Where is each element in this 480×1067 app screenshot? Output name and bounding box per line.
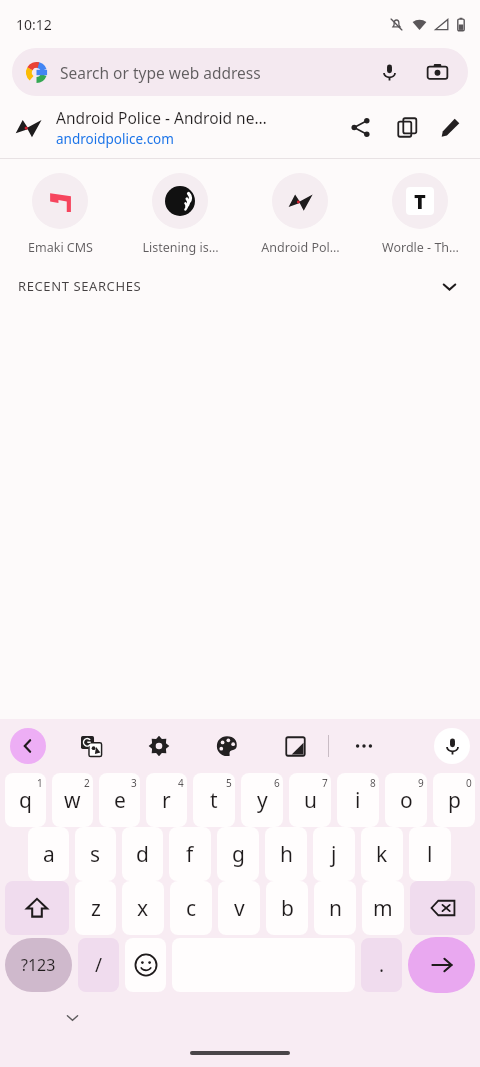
staticText: /: [95, 952, 103, 978]
staticText: s: [90, 840, 101, 869]
button[interactable]: Translate: [74, 729, 108, 763]
staticText: q: [19, 786, 32, 815]
button[interactable]: p: [433, 773, 475, 827]
staticText: k: [376, 840, 388, 869]
staticText: Listening is…: [142, 239, 219, 256]
staticText: Search or type web address: [60, 62, 261, 83]
button[interactable]: Theme: [210, 729, 244, 763]
staticText: Android Police - Android ne…: [56, 107, 267, 128]
button[interactable]: q: [5, 773, 46, 827]
button[interactable]: g: [217, 827, 259, 881]
button[interactable]: d: [122, 827, 163, 881]
button[interactable]: Emoji: [125, 938, 166, 992]
button[interactable]: w: [52, 773, 93, 827]
staticText: n: [329, 894, 342, 923]
staticText: p: [448, 786, 461, 815]
button[interactable]: Android Pol…: [240, 169, 360, 260]
button[interactable]: /: [78, 938, 119, 992]
staticText: i: [355, 786, 361, 815]
button[interactable]: Search or type web address: [12, 48, 468, 96]
button[interactable]: Edit query: [426, 103, 474, 151]
staticText: 6: [274, 776, 280, 790]
button[interactable]: j: [313, 827, 355, 881]
button[interactable]: f: [169, 827, 211, 881]
staticText: y: [257, 786, 268, 815]
button[interactable]: a: [28, 827, 69, 881]
staticText: b: [281, 894, 294, 923]
button[interactable]: c: [170, 881, 212, 935]
button[interactable]: z: [75, 881, 116, 935]
staticText: 5: [226, 776, 232, 790]
staticText: 9: [418, 776, 424, 790]
button[interactable]: s: [75, 827, 116, 881]
button[interactable]: t: [193, 773, 235, 827]
staticText: d: [136, 840, 149, 869]
staticText: w: [64, 786, 81, 815]
button[interactable]: T: [360, 169, 480, 260]
button[interactable]: RECENT SEARCHES: [0, 260, 480, 312]
staticText: h: [280, 840, 293, 869]
button[interactable]: b: [266, 881, 308, 935]
button[interactable]: e: [99, 773, 140, 827]
staticText: x: [137, 894, 149, 923]
button[interactable]: Shift: [5, 881, 69, 935]
button[interactable]: l: [409, 827, 451, 881]
button[interactable]: Listening is…: [120, 169, 240, 260]
staticText: u: [304, 786, 317, 815]
staticText: 4: [178, 776, 184, 790]
button[interactable]: Search with camera: [420, 55, 454, 89]
staticText: v: [234, 894, 245, 923]
button[interactable]: Back: [10, 728, 46, 764]
button[interactable]: i: [337, 773, 379, 827]
staticText: 10:12: [16, 15, 52, 34]
staticText: e: [114, 786, 126, 815]
button[interactable]: Resize keyboard: [278, 729, 312, 763]
staticText: m: [373, 894, 393, 923]
button[interactable]: Voice input: [434, 728, 470, 764]
staticText: 1: [37, 776, 43, 790]
staticText: l: [427, 840, 433, 869]
button[interactable]: Android Police - Android ne…: [0, 96, 480, 158]
staticText: o: [400, 786, 413, 815]
button[interactable]: Copy: [388, 105, 426, 149]
button[interactable]: Settings: [142, 729, 176, 763]
button[interactable]: Hide keyboard: [56, 1001, 88, 1033]
button[interactable]: x: [122, 881, 164, 935]
staticText: 0: [466, 776, 472, 790]
button[interactable]: n: [314, 881, 356, 935]
staticText: r: [162, 786, 171, 815]
button[interactable]: Emaki CMS: [0, 169, 120, 260]
button[interactable]: Voice search: [372, 55, 406, 89]
button[interactable]: .: [361, 938, 402, 992]
staticText: g: [232, 840, 245, 869]
staticText: Android Pol…: [261, 239, 340, 256]
staticText: 3: [131, 776, 137, 790]
button[interactable]: h: [265, 827, 307, 881]
staticText: Emaki CMS: [28, 239, 93, 256]
button[interactable]: Go: [408, 937, 475, 993]
button[interactable]: More options: [347, 729, 381, 763]
button[interactable]: o: [385, 773, 427, 827]
button[interactable]: y: [241, 773, 283, 827]
staticText: a: [43, 840, 55, 869]
staticText: T: [414, 188, 426, 215]
staticText: 2: [84, 776, 90, 790]
button[interactable]: m: [362, 881, 404, 935]
button[interactable]: Backspace: [410, 881, 475, 935]
staticText: .: [379, 952, 385, 978]
button[interactable]: r: [146, 773, 187, 827]
button[interactable]: Share: [338, 105, 382, 149]
button[interactable]: u: [289, 773, 331, 827]
staticText: t: [210, 786, 218, 815]
staticText: 8: [370, 776, 376, 790]
staticText: 7: [322, 776, 328, 790]
staticText: z: [91, 894, 101, 923]
staticText: j: [331, 840, 337, 869]
staticText: ?123: [21, 954, 56, 976]
staticText: f: [186, 840, 194, 869]
staticText: androidpolice.com: [56, 130, 174, 148]
button[interactable]: v: [218, 881, 260, 935]
button[interactable]: ?123: [5, 938, 72, 992]
button[interactable]: k: [361, 827, 403, 881]
